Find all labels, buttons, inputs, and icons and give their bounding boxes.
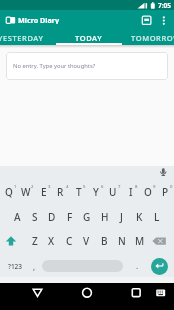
button[interactable]: G <box>78 210 95 224</box>
button[interactable]: H <box>96 210 113 224</box>
button[interactable]: TODAY <box>56 33 122 43</box>
button[interactable] <box>73 283 101 310</box>
button[interactable]: S <box>26 210 43 224</box>
staticText: I <box>129 185 133 199</box>
staticText: 7 <box>118 183 121 189</box>
button[interactable]: M <box>131 234 148 248</box>
button[interactable]: R <box>52 185 69 199</box>
staticText: W <box>21 185 31 199</box>
button[interactable]: J <box>113 210 130 224</box>
button[interactable]: F <box>61 210 78 224</box>
staticText: TODAY <box>75 33 103 43</box>
staticText: N <box>118 234 126 248</box>
button[interactable]: E <box>35 185 52 199</box>
staticText: X <box>48 234 55 248</box>
staticText: M <box>135 234 145 248</box>
button[interactable]: I <box>122 185 139 199</box>
staticText: Q <box>5 185 13 199</box>
button[interactable] <box>152 234 170 248</box>
staticText: K <box>136 210 143 224</box>
staticText: Y <box>93 185 99 199</box>
staticText: R <box>57 185 64 199</box>
staticText: 5 <box>83 183 86 189</box>
button[interactable] <box>139 13 153 27</box>
button[interactable]: YESTERDAY <box>0 33 54 43</box>
staticText: S <box>32 210 38 224</box>
staticText: E <box>41 185 47 199</box>
staticText: 7:05 <box>158 1 171 10</box>
staticText: U <box>109 185 117 199</box>
staticText: TOMORROW <box>131 33 174 43</box>
staticText: A <box>14 210 21 224</box>
button[interactable]: N <box>113 234 130 248</box>
staticText: 1 <box>14 183 17 189</box>
staticText: G <box>83 210 91 224</box>
staticText: 0 <box>170 183 173 189</box>
staticText: . <box>136 260 139 271</box>
button[interactable]: V <box>78 234 95 248</box>
staticText: 6 <box>101 183 104 189</box>
button[interactable]: P <box>157 185 174 199</box>
button[interactable] <box>158 13 170 27</box>
staticText: 8 <box>135 183 138 189</box>
staticText: O <box>144 185 152 199</box>
button[interactable] <box>24 283 52 310</box>
staticText: P <box>162 185 169 199</box>
staticText: T <box>76 185 82 199</box>
button[interactable]: X <box>43 234 60 248</box>
staticText: YESTERDAY <box>0 33 44 43</box>
button[interactable]: U <box>104 185 121 199</box>
staticText: Micro Diary <box>18 15 60 24</box>
staticText: 4 <box>66 183 69 189</box>
button[interactable] <box>156 166 171 179</box>
button[interactable]: B <box>96 234 113 248</box>
button[interactable] <box>2 234 20 248</box>
staticText: C <box>66 234 73 248</box>
button[interactable] <box>151 258 168 275</box>
button[interactable]: . <box>131 258 143 272</box>
button[interactable]: TOMORROW <box>123 33 174 43</box>
staticText: 3 <box>48 183 51 189</box>
button[interactable]: C <box>61 234 78 248</box>
staticText: Z <box>32 234 38 248</box>
button[interactable]: A <box>9 210 26 224</box>
button[interactable]: Y <box>87 185 104 199</box>
staticText: B <box>101 234 108 248</box>
button[interactable]: Z <box>26 234 43 248</box>
staticText: L <box>154 210 160 224</box>
button[interactable]: T <box>70 185 87 199</box>
button[interactable]: W <box>17 185 34 199</box>
staticText: J <box>120 210 123 224</box>
button[interactable] <box>42 260 123 272</box>
staticText: ?123 <box>8 262 23 271</box>
staticText: 2 <box>31 183 34 189</box>
button[interactable]: D <box>43 210 60 224</box>
staticText: H <box>101 210 109 224</box>
staticText: F <box>67 210 73 224</box>
staticText: V <box>83 234 90 248</box>
button[interactable]: O <box>139 185 156 199</box>
staticText: D <box>48 210 56 224</box>
button[interactable] <box>6 52 168 80</box>
button[interactable]: L <box>148 210 165 224</box>
staticText: No entry. Type your thoughts? <box>13 62 96 70</box>
staticText: , <box>33 261 36 272</box>
button[interactable]: ?123 <box>4 260 26 272</box>
button[interactable]: , <box>28 259 40 273</box>
button[interactable]: K <box>131 210 148 224</box>
button[interactable]: Q <box>0 185 17 199</box>
staticText: 9 <box>153 183 156 189</box>
button[interactable] <box>122 283 150 310</box>
